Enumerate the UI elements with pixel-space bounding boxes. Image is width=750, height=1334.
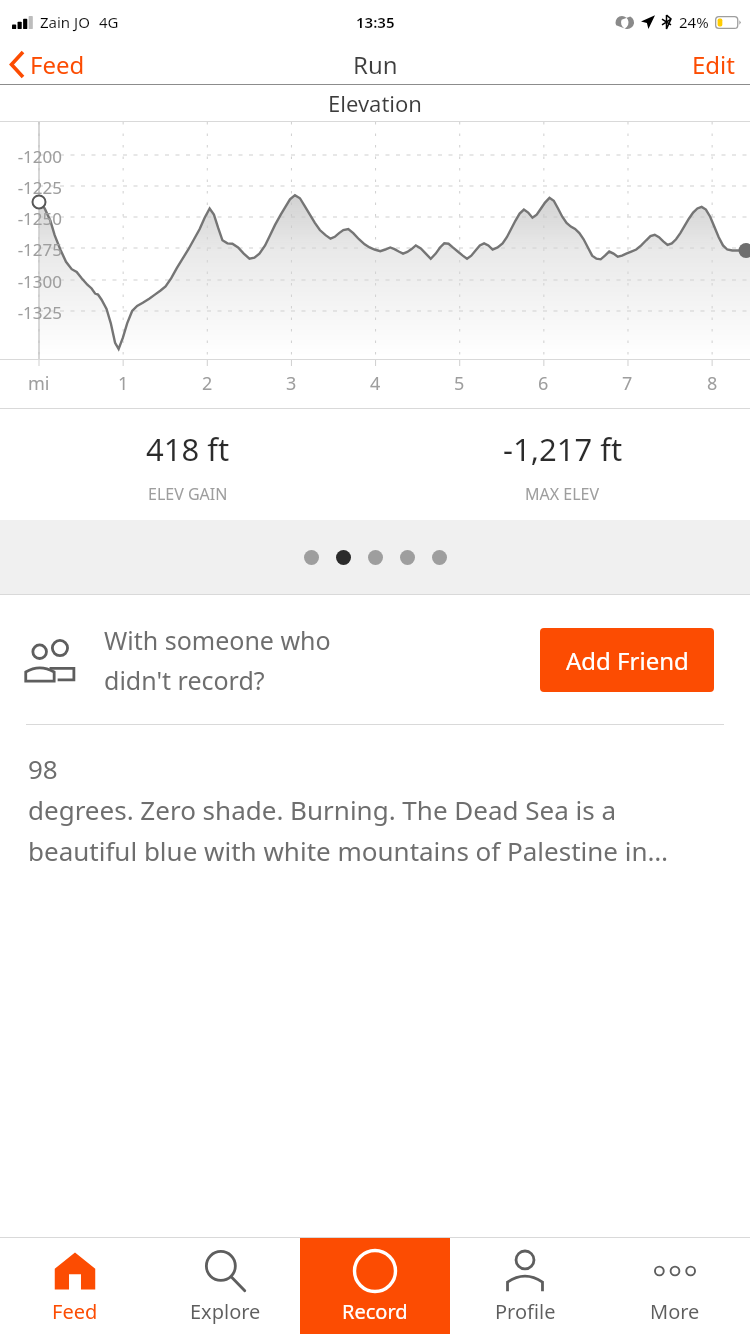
staticText: Feed — [30, 48, 85, 81]
staticText: degrees. Zero shade. Burning. The Dead S… — [28, 792, 617, 827]
staticText: 4 — [370, 371, 381, 396]
staticText: didn't record? — [104, 663, 265, 697]
staticText: Record — [342, 1298, 408, 1325]
button[interactable]: Record — [300, 1238, 450, 1334]
button[interactable]: More — [600, 1238, 750, 1334]
staticText: 2 — [202, 371, 213, 396]
staticText: Profile — [495, 1298, 556, 1325]
staticText: 98 — [28, 751, 58, 786]
other: Feed — [52, 1248, 98, 1294]
button[interactable]: Feed — [0, 45, 99, 84]
staticText: Zain JO — [40, 12, 90, 32]
staticText: -1325 — [0, 301, 62, 324]
staticText: More — [650, 1298, 700, 1325]
staticText: Run — [353, 48, 398, 81]
button[interactable]: With someone who — [0, 595, 750, 725]
other: Profile — [502, 1248, 548, 1294]
other: Explore — [202, 1248, 248, 1294]
staticText: 1 — [118, 371, 129, 396]
staticText: -1225 — [0, 176, 62, 199]
staticText: 6 — [538, 371, 549, 396]
staticText: 7 — [622, 371, 633, 396]
staticText: Add Friend — [566, 644, 689, 677]
staticText: -1250 — [0, 207, 62, 230]
button[interactable]: Add Friend — [540, 628, 714, 692]
button[interactable]: Feed — [0, 1238, 150, 1334]
staticText: -1300 — [0, 270, 62, 293]
staticText: 4G — [99, 12, 119, 32]
button[interactable]: Edit — [677, 45, 750, 84]
staticText: beautiful blue with white mountains of P… — [28, 833, 669, 868]
staticText: 24% — [679, 12, 709, 32]
button[interactable]: Profile — [450, 1238, 600, 1334]
staticText: Elevation — [328, 88, 422, 118]
staticText: MAX ELEV — [525, 483, 600, 505]
staticText: -1275 — [0, 238, 62, 261]
staticText: With someone who — [104, 623, 331, 657]
button[interactable]: 418 ft — [0, 409, 375, 520]
staticText: 418 ft — [146, 428, 230, 470]
staticText: Explore — [190, 1298, 261, 1325]
button[interactable]: -1,217 ft — [375, 409, 750, 520]
button[interactable]: Explore — [150, 1238, 300, 1334]
staticText: -1,217 ft — [503, 428, 623, 470]
staticText: ELEV GAIN — [148, 483, 228, 505]
staticText: Edit — [692, 48, 735, 81]
staticText: 13:35 — [356, 12, 395, 32]
staticText: mi — [28, 371, 50, 396]
staticText: 3 — [286, 371, 297, 396]
other: More — [652, 1248, 698, 1294]
staticText: -1200 — [0, 145, 62, 168]
staticText: Feed — [52, 1298, 98, 1325]
staticText: 8 — [707, 371, 718, 396]
staticText: 5 — [454, 371, 465, 396]
